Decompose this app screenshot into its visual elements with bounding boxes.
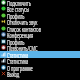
staticText: Профиль <box>7 12 25 19</box>
other: О программе <box>1 65 6 70</box>
other: Профиль <box>1 39 6 44</box>
other: Позвонить/СМС <box>1 45 6 50</box>
staticText: Статистика <box>7 51 28 58</box>
other: Все статусы <box>1 6 6 11</box>
staticText: Конференция <box>7 31 33 38</box>
staticText: Все статусы <box>7 5 30 12</box>
other: Отключить звук <box>1 19 6 24</box>
other: Профиль <box>1 13 6 18</box>
button[interactable]: Статистика <box>0 51 80 58</box>
other: Статистика <box>1 52 6 57</box>
staticText: Отключить звук <box>7 18 38 25</box>
other: Статистика <box>1 58 6 63</box>
staticText: Позвонить/СМС <box>7 44 38 51</box>
staticText: О программе <box>7 64 33 71</box>
staticText: Список контактов <box>7 25 41 32</box>
staticText: Выход <box>7 70 19 77</box>
staticText: Статистика <box>7 57 28 64</box>
other: Конференция <box>1 32 6 37</box>
button[interactable]: О программе <box>0 64 80 71</box>
other: Выход <box>1 71 6 76</box>
other: Подключить <box>1 0 6 5</box>
button[interactable]: Позвонить/СМС <box>0 44 80 51</box>
other: Список контактов <box>1 26 6 31</box>
staticText: Подключить <box>7 0 31 6</box>
button[interactable]: Профиль <box>0 38 80 45</box>
button[interactable]: Выход <box>0 70 80 77</box>
button[interactable]: Подключить <box>0 0 80 6</box>
button[interactable]: Статистика <box>0 57 80 64</box>
button[interactable]: Список контактов <box>0 25 80 32</box>
button[interactable]: Все статусы <box>0 5 80 12</box>
staticText: Профиль <box>7 38 25 45</box>
button[interactable]: Конференция <box>0 31 80 38</box>
button[interactable]: Отключить звук <box>0 18 80 25</box>
button[interactable]: Профиль <box>0 12 80 19</box>
